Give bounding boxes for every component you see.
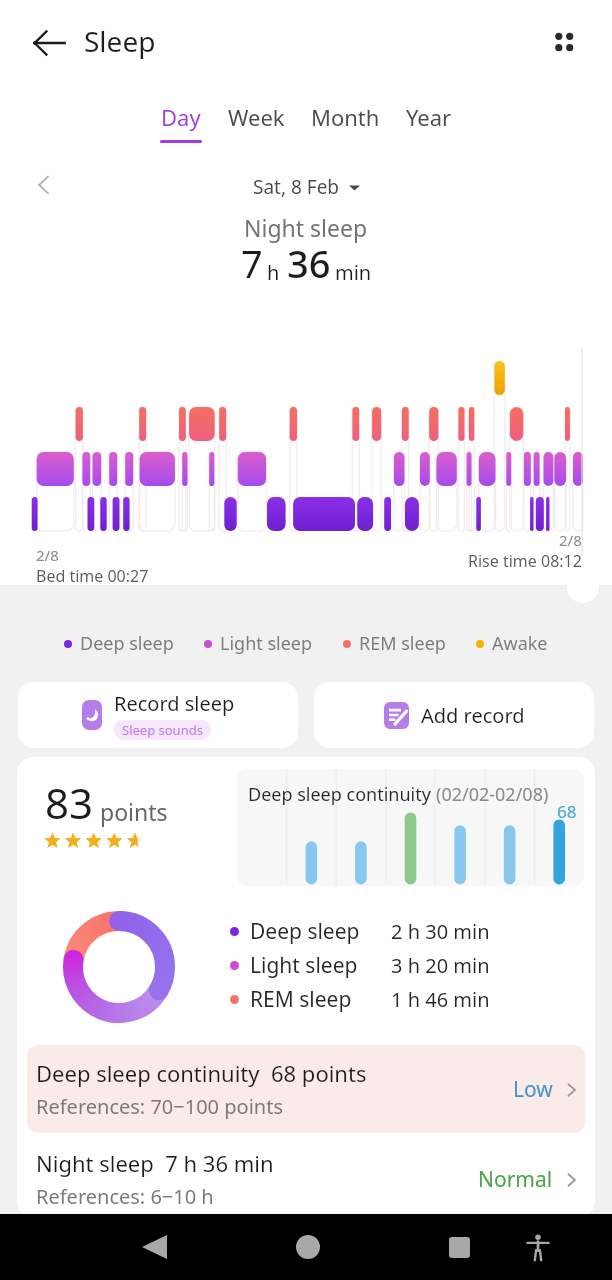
staticText: Day	[161, 102, 201, 132]
staticText: 36	[287, 237, 331, 289]
staticText: Normal	[478, 1165, 553, 1194]
staticText: Deep sleep continuity	[248, 782, 436, 807]
staticText: Week	[228, 102, 285, 132]
staticText: (02/02-02/08)	[436, 782, 549, 807]
staticText: Month	[311, 102, 380, 132]
staticText: 83	[45, 774, 94, 831]
button[interactable]: Home	[285, 1224, 331, 1270]
staticText: REM sleep	[250, 985, 352, 1014]
button[interactable]: Month	[298, 102, 393, 143]
staticText: Awake	[492, 631, 548, 656]
staticText: Light sleep	[250, 951, 358, 980]
staticText: 68	[557, 800, 577, 823]
button[interactable]: Record sleep	[18, 682, 298, 748]
staticText: min	[335, 259, 372, 286]
button[interactable]: Night sleep 7 h 36 min	[17, 1139, 595, 1211]
staticText: Night sleep	[244, 212, 368, 243]
staticText: Sat, 8 Feb	[253, 174, 340, 200]
staticText: 1 h 46 min	[391, 986, 490, 1013]
staticText: Deep sleep	[250, 917, 360, 946]
button[interactable]: Back	[26, 20, 72, 66]
button[interactable]: Deep sleep continuity 68 points	[27, 1045, 585, 1133]
button[interactable]: Week	[215, 102, 298, 143]
staticText: h	[267, 259, 280, 286]
button[interactable]: Back	[131, 1224, 177, 1270]
staticText: Sleep sounds	[122, 721, 203, 739]
staticText: Night sleep 7 h 36 min	[36, 1148, 274, 1178]
staticText: Deep sleep continuity 68 points	[36, 1058, 367, 1088]
staticText: 7	[241, 237, 263, 289]
staticText: 2/8	[559, 530, 582, 550]
staticText: References: 70−100 points	[36, 1093, 283, 1120]
staticText: Light sleep	[220, 631, 313, 656]
staticText: Low	[513, 1075, 553, 1104]
staticText: 2/8	[36, 545, 59, 565]
button[interactable]: Previous day	[24, 165, 64, 205]
button[interactable]: Add record	[314, 682, 594, 748]
staticText: 3 h 20 min	[391, 952, 490, 979]
staticText: points	[100, 796, 168, 827]
staticText: Rise time 08:12	[468, 550, 582, 572]
staticText: References: 6−10 h	[36, 1183, 214, 1210]
staticText: 2 h 30 min	[391, 918, 490, 945]
button[interactable]: Sat, 8 Feb	[253, 174, 360, 200]
button[interactable]: More options	[540, 18, 588, 66]
button[interactable]: Day	[147, 102, 215, 143]
staticText: Record sleep	[114, 690, 235, 717]
staticText: Sleep	[84, 22, 156, 60]
button[interactable]: Recents	[436, 1224, 482, 1270]
staticText: Year	[406, 102, 452, 132]
staticText: Add record	[421, 702, 525, 729]
button[interactable]: Year	[393, 102, 465, 143]
staticText: Deep sleep	[80, 631, 174, 656]
staticText: REM sleep	[359, 631, 446, 656]
button[interactable]: Accessibility	[515, 1224, 561, 1270]
staticText: Bed time 00:27	[36, 565, 149, 587]
